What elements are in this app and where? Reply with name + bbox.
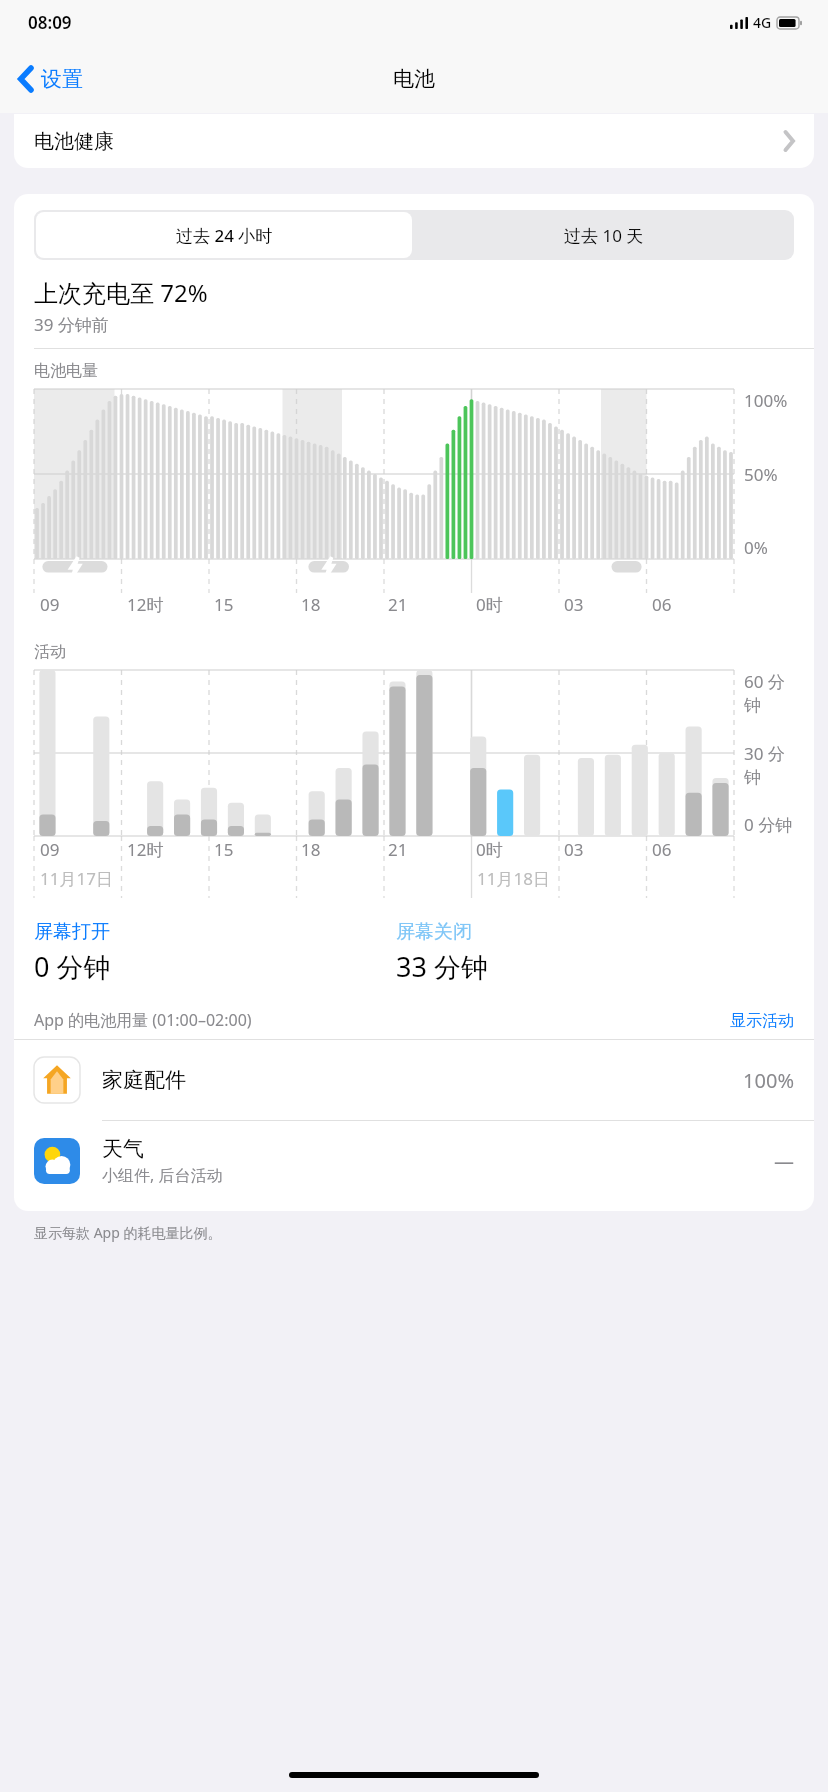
staticText: 家庭配件 xyxy=(102,1067,186,1093)
button[interactable]: 显示活动 xyxy=(730,1011,794,1031)
staticText: 显示每款 App 的耗电量比例。 xyxy=(34,1223,222,1242)
staticText: 15 xyxy=(214,838,234,861)
staticText: 18 xyxy=(301,593,321,616)
staticText: 60 分钟 xyxy=(744,670,800,716)
staticText: 天气 xyxy=(102,1136,144,1162)
staticText: 30 分钟 xyxy=(744,742,800,788)
staticText: 0时 xyxy=(476,593,503,616)
staticText: 0 分钟 xyxy=(744,813,793,836)
staticText: — xyxy=(774,1148,794,1175)
staticText: 设置 xyxy=(41,66,83,92)
staticText: 上次充电至 72% xyxy=(34,276,208,309)
staticText: 4G xyxy=(753,13,772,32)
staticText: 过去 24 小时 xyxy=(176,224,273,247)
staticText: App 的电池用量 (01:00–02:00) xyxy=(34,1009,252,1031)
staticText: 过去 10 天 xyxy=(564,224,644,247)
button[interactable]: 过去 24 小时 xyxy=(36,212,412,258)
staticText: 屏幕关闭 xyxy=(396,920,472,944)
staticText: 12时 xyxy=(127,593,164,616)
staticText: 39 分钟前 xyxy=(34,313,109,336)
staticText: 15 xyxy=(214,593,234,616)
staticText: 50% xyxy=(744,463,778,486)
staticText: 09 xyxy=(40,838,60,861)
staticText: 11月18日 xyxy=(477,867,550,890)
staticText: 33 分钟 xyxy=(396,948,488,985)
button[interactable]: 家庭配件 xyxy=(14,1040,814,1120)
staticText: 08:09 xyxy=(28,11,72,34)
staticText: 21 xyxy=(388,838,408,861)
staticText: 03 xyxy=(564,593,584,616)
staticText: 0时 xyxy=(476,838,503,861)
staticText: 21 xyxy=(388,593,408,616)
staticText: 100% xyxy=(743,1067,794,1094)
staticText: 12时 xyxy=(127,838,164,861)
staticText: 18 xyxy=(301,838,321,861)
button[interactable]: 电池健康 xyxy=(14,114,814,168)
staticText: 06 xyxy=(652,593,672,616)
staticText: 11月17日 xyxy=(40,867,113,890)
button[interactable]: 天气 xyxy=(14,1121,814,1201)
staticText: 电池电量 xyxy=(34,361,98,381)
staticText: 0 分钟 xyxy=(34,948,111,985)
staticText: 0% xyxy=(744,536,768,559)
staticText: 电池 xyxy=(393,66,435,92)
staticText: 06 xyxy=(652,838,672,861)
staticText: 屏幕打开 xyxy=(34,920,110,944)
staticText: 电池健康 xyxy=(34,129,114,154)
staticText: 03 xyxy=(564,838,584,861)
staticText: 活动 xyxy=(34,642,66,662)
staticText: 09 xyxy=(40,593,60,616)
staticText: 小组件, 后台活动 xyxy=(102,1164,223,1186)
button[interactable]: 设置 xyxy=(0,60,95,98)
staticText: 100% xyxy=(744,389,788,412)
button[interactable]: 过去 10 天 xyxy=(414,210,794,260)
